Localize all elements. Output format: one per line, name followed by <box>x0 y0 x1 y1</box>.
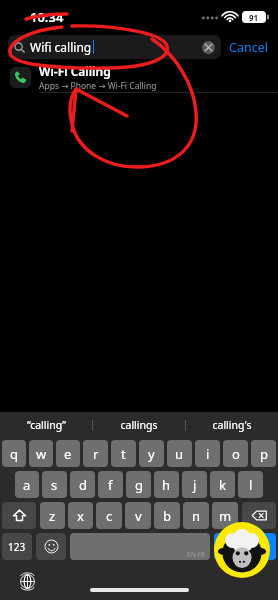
button[interactable]: p <box>251 440 276 467</box>
staticText: a <box>23 476 31 494</box>
staticText: f <box>108 476 113 494</box>
staticText: 91 <box>249 12 259 23</box>
staticText: s <box>51 476 58 494</box>
staticText: x <box>77 507 84 525</box>
staticText: m <box>219 507 232 525</box>
staticText: 10:34 <box>30 8 64 26</box>
staticText: g <box>135 476 143 494</box>
staticText: j <box>193 476 197 494</box>
button[interactable]: calling's <box>186 412 278 438</box>
button[interactable]: v <box>125 502 151 529</box>
staticText: o <box>232 445 240 463</box>
button[interactable]: m <box>212 502 238 529</box>
button[interactable]: Emoji <box>36 533 66 560</box>
button[interactable]: c <box>96 502 122 529</box>
staticText: v <box>135 507 142 525</box>
button[interactable]: j <box>182 471 207 498</box>
staticText: b <box>163 507 171 525</box>
button[interactable]: Cancel <box>221 39 270 56</box>
staticText: EN FR <box>187 550 206 559</box>
staticText: p <box>260 445 268 463</box>
staticText: r <box>93 445 99 463</box>
button[interactable]: search <box>214 533 276 560</box>
staticText: h <box>162 476 171 494</box>
button[interactable]: z <box>40 502 65 529</box>
staticText: Wifi calling <box>30 39 92 55</box>
staticText: i <box>206 445 210 463</box>
button[interactable]: y <box>139 440 164 467</box>
staticText: Wi-Fi Calling <box>39 63 111 79</box>
button[interactable]: x <box>68 502 93 529</box>
button[interactable]: Wi-Fi Calling <box>0 62 278 92</box>
staticText: “calling” <box>27 418 66 432</box>
staticText: c <box>106 507 113 525</box>
button[interactable]: r <box>83 440 108 467</box>
button[interactable]: n <box>183 502 209 529</box>
button[interactable]: k <box>210 471 235 498</box>
button[interactable]: w <box>29 440 53 467</box>
button[interactable]: i <box>195 440 220 467</box>
button[interactable]: “calling” <box>0 412 92 438</box>
staticText: y <box>148 445 155 463</box>
button[interactable]: l <box>238 471 263 498</box>
staticText: e <box>64 445 72 463</box>
button[interactable]: EN FR <box>70 533 210 560</box>
staticText: k <box>219 476 226 494</box>
button[interactable]: e <box>56 440 80 467</box>
button[interactable]: callings <box>93 412 185 438</box>
staticText: Apps → Phone → Wi-Fi Calling <box>39 80 157 92</box>
staticText: search <box>230 540 261 554</box>
button[interactable]: Delete <box>242 502 276 529</box>
button[interactable]: Change keyboard language <box>18 572 36 590</box>
staticText: calling's <box>212 418 252 432</box>
staticText: w <box>36 445 47 463</box>
button[interactable]: Shift <box>2 502 36 529</box>
button[interactable]: o <box>223 440 248 467</box>
staticText: d <box>79 476 87 494</box>
staticText: 123 <box>8 540 26 554</box>
staticText: t <box>121 445 126 463</box>
staticText: callings <box>120 418 158 432</box>
staticText: q <box>10 445 18 463</box>
staticText: Cancel <box>229 39 268 56</box>
button[interactable]: s <box>42 471 67 498</box>
button[interactable]: u <box>167 440 192 467</box>
button[interactable]: d <box>70 471 95 498</box>
staticText: z <box>49 507 56 525</box>
button[interactable]: b <box>154 502 180 529</box>
button[interactable]: g <box>126 471 151 498</box>
staticText: u <box>175 445 184 463</box>
button[interactable]: a <box>15 471 39 498</box>
button[interactable]: q <box>2 440 26 467</box>
button[interactable]: Clear text <box>202 41 215 54</box>
button[interactable]: Wifi calling <box>8 35 221 59</box>
staticText: l <box>249 476 253 494</box>
button[interactable]: f <box>98 471 123 498</box>
button[interactable]: h <box>154 471 179 498</box>
staticText: n <box>192 507 201 525</box>
button[interactable]: 123 <box>2 533 32 560</box>
button[interactable]: t <box>111 440 136 467</box>
